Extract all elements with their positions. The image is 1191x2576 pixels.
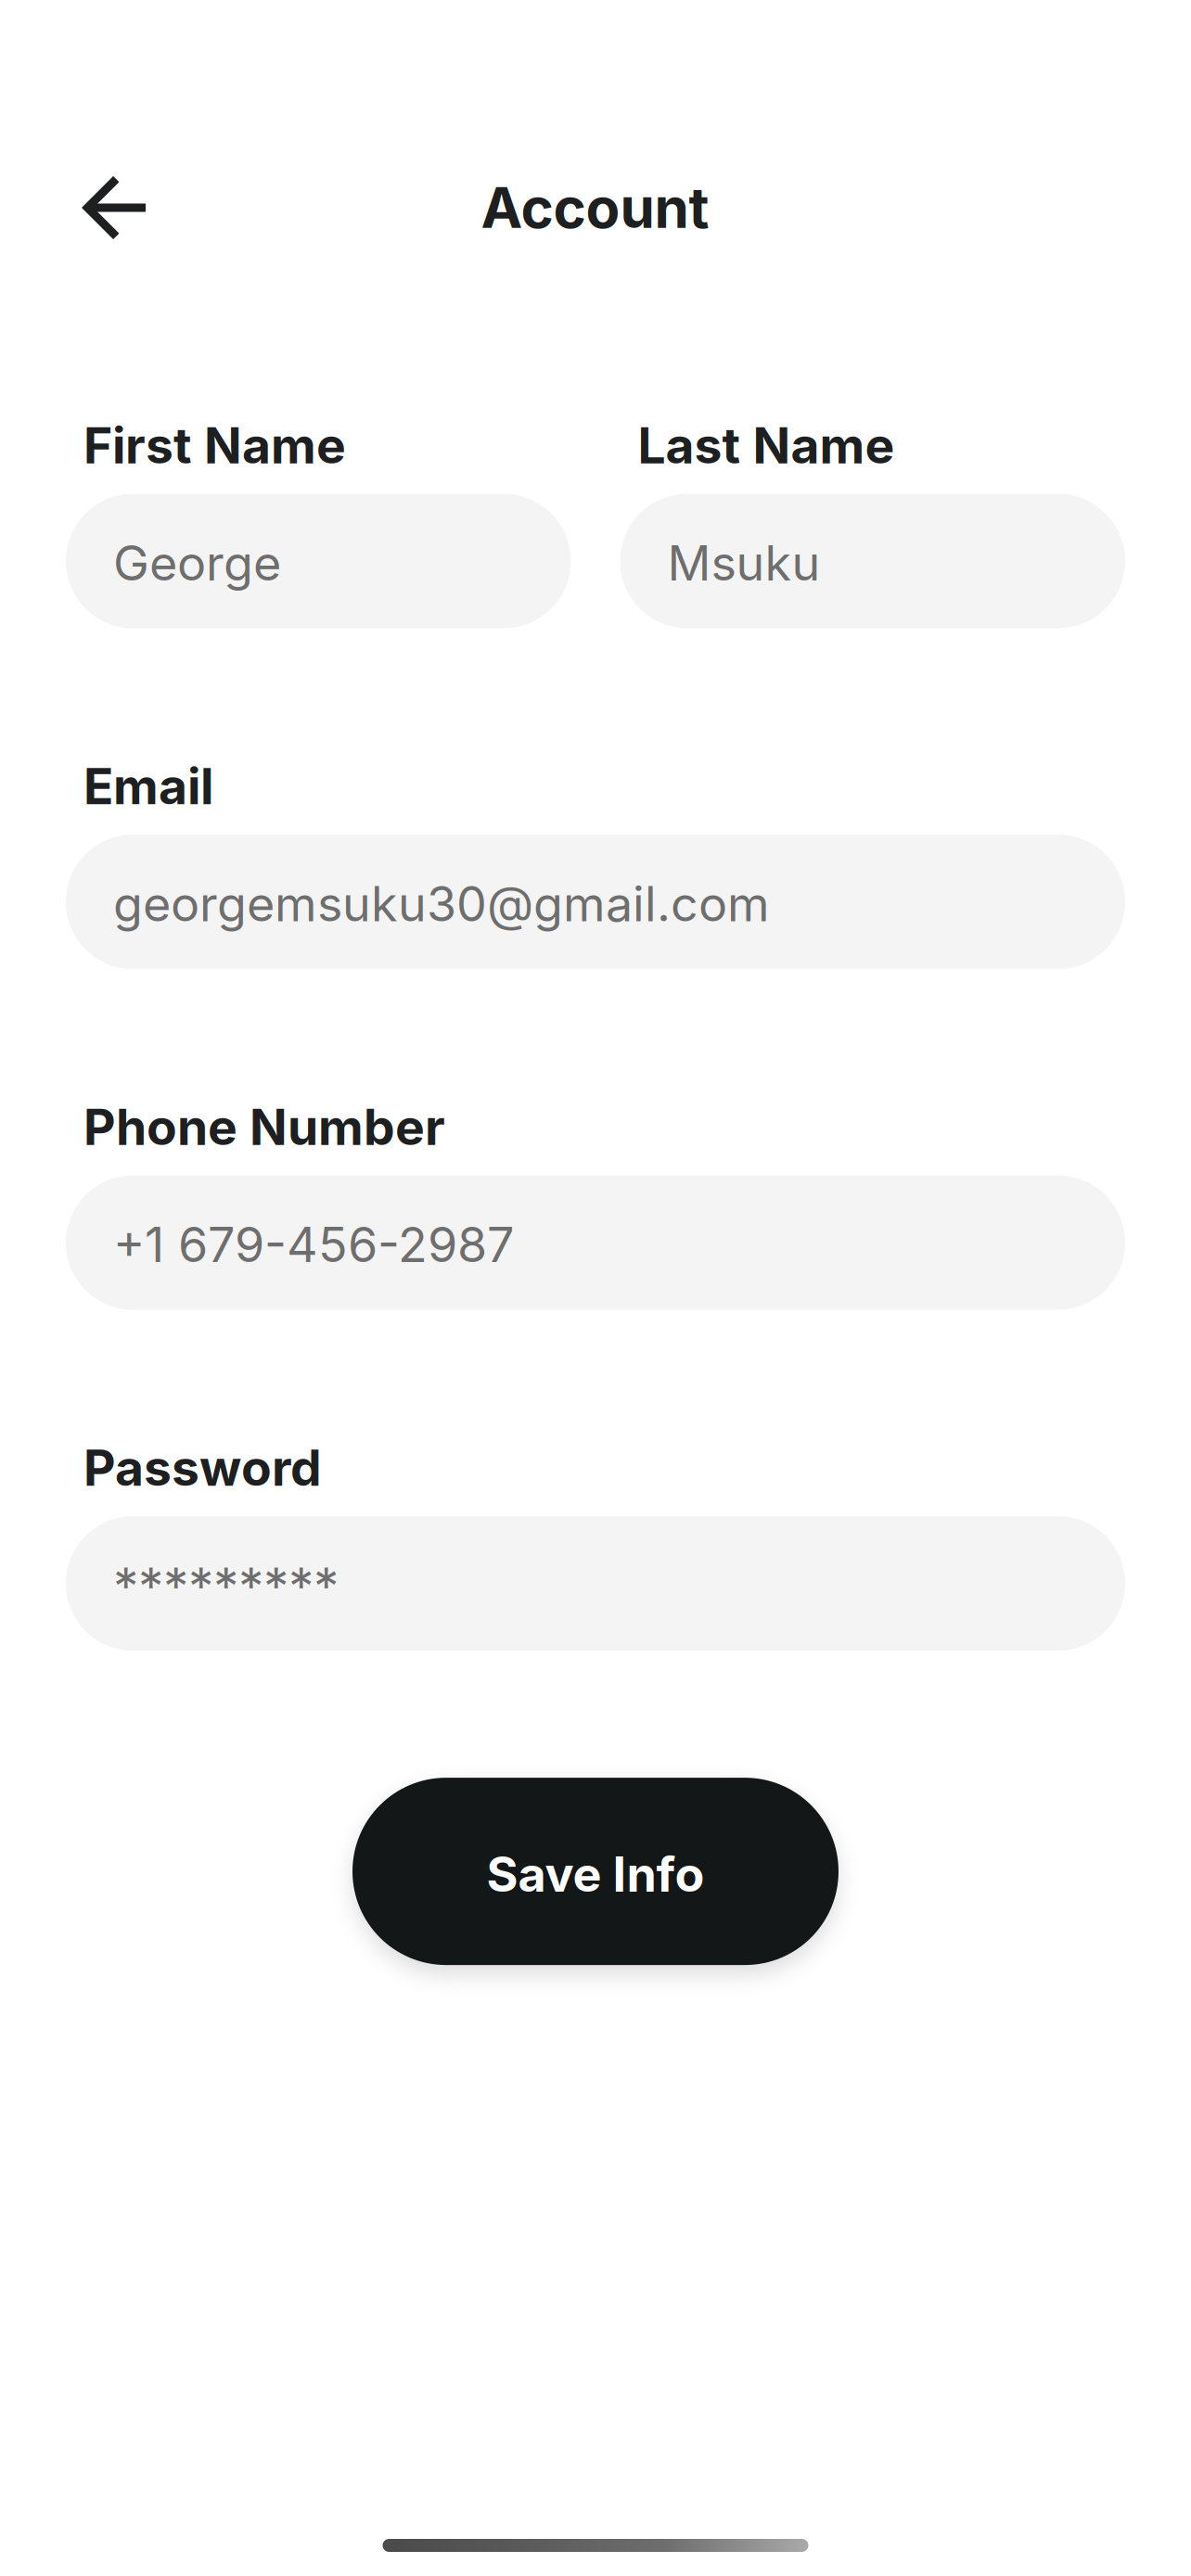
button[interactable]: Msuku	[620, 494, 1125, 628]
staticText: georgemsuku30@gmail.com	[113, 875, 770, 933]
staticText: Account	[481, 174, 709, 241]
staticText: Save Info	[487, 1845, 704, 1903]
button[interactable]: Back	[72, 160, 155, 255]
staticText: Phone Number	[83, 1097, 445, 1157]
staticText: Last Name	[638, 415, 895, 475]
button[interactable]: *********	[66, 1516, 1125, 1651]
staticText: First Name	[83, 415, 346, 475]
staticText: Msuku	[667, 534, 820, 592]
staticText: Email	[83, 756, 213, 816]
button[interactable]: George	[66, 494, 571, 628]
staticText: Password	[83, 1438, 322, 1498]
staticText: *********	[113, 1556, 339, 1617]
staticText: George	[113, 534, 281, 592]
button[interactable]: +1 679-456-2987	[66, 1175, 1125, 1310]
button[interactable]: georgemsuku30@gmail.com	[66, 835, 1125, 969]
staticText: +1 679-456-2987	[113, 1215, 514, 1274]
button[interactable]: Save Info	[352, 1778, 839, 1965]
